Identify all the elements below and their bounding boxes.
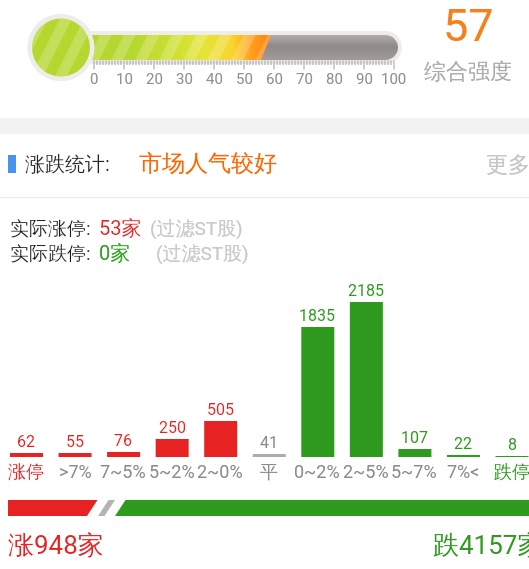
button[interactable]: 更多 (483, 147, 529, 179)
staticText: 107 (401, 428, 428, 447)
staticText: 0 (90, 70, 99, 88)
staticText: 40 (206, 70, 223, 88)
staticText: 更多 (486, 151, 529, 179)
staticText: 5~7% (391, 461, 437, 482)
staticText: 22 (454, 434, 472, 453)
staticText: 平 (260, 461, 278, 484)
staticText: 2185 (348, 281, 384, 300)
staticText: (过滤ST股) (150, 217, 243, 241)
staticText: 0家 (99, 241, 131, 266)
staticText: 90 (356, 70, 373, 88)
staticText: 20 (146, 70, 163, 88)
staticText: 5~2% (149, 461, 195, 482)
staticText: 涨停 (8, 461, 44, 484)
staticText: >7% (59, 461, 92, 482)
staticText: 1835 (299, 306, 335, 325)
staticText: 涨跌统计: (25, 152, 110, 177)
staticText: 2~0% (197, 461, 243, 482)
staticText: 80 (326, 70, 343, 88)
staticText: 55 (66, 432, 84, 451)
staticText: 250 (159, 418, 186, 437)
staticText: 综合强度 (424, 58, 512, 86)
staticText: 2~5% (343, 461, 389, 482)
staticText: 0~2% (294, 461, 340, 482)
staticText: 53家 (99, 216, 142, 241)
staticText: 跌停 (494, 461, 529, 484)
staticText: 实际涨停: (10, 217, 91, 241)
button[interactable]: 涨跌统计: (20, 146, 290, 182)
staticText: 100 (381, 70, 407, 88)
staticText: 62 (17, 432, 35, 451)
staticText: 7%< (447, 461, 480, 482)
staticText: 市场人气较好 (139, 149, 277, 178)
staticText: 30 (176, 70, 193, 88)
staticText: 8 (508, 435, 517, 454)
staticText: 50 (236, 70, 253, 88)
staticText: 41 (260, 433, 278, 452)
staticText: 57 (443, 0, 494, 52)
staticText: 505 (207, 400, 234, 419)
staticText: 实际跌停: (10, 242, 91, 266)
staticText: 7~5% (100, 461, 146, 482)
staticText: 涨948家 (8, 529, 104, 562)
staticText: 10 (116, 70, 133, 88)
staticText: 76 (114, 431, 132, 450)
staticText: (过滤ST股) (156, 242, 249, 266)
staticText: 跌4157家 (433, 529, 529, 562)
staticText: 70 (296, 70, 313, 88)
staticText: 60 (266, 70, 283, 88)
